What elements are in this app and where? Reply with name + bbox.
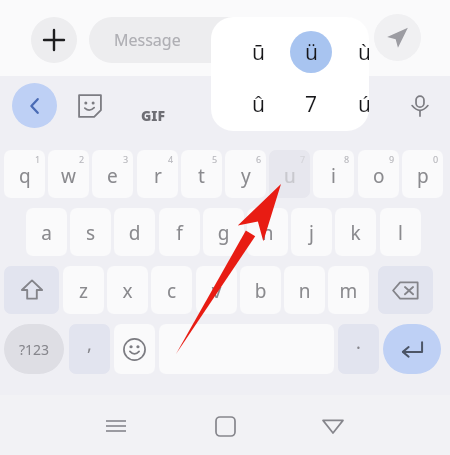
staticText: g bbox=[203, 220, 244, 256]
staticText: u bbox=[284, 163, 296, 189]
staticText: ?123 bbox=[19, 340, 50, 359]
button[interactable]: z bbox=[63, 266, 104, 314]
button[interactable]: Stickers bbox=[74, 90, 106, 122]
button[interactable]: x bbox=[107, 266, 148, 314]
staticText: m bbox=[328, 278, 369, 314]
button[interactable]: k bbox=[335, 208, 376, 256]
staticText: r bbox=[154, 163, 162, 189]
button[interactable]: Enter bbox=[383, 324, 441, 374]
staticText: l bbox=[380, 220, 421, 256]
button[interactable]: i bbox=[313, 150, 354, 198]
staticText: . bbox=[338, 330, 379, 374]
button[interactable]: Backspace bbox=[378, 266, 433, 314]
staticText: c bbox=[151, 278, 192, 314]
button[interactable]: Hide keyboard bbox=[317, 410, 349, 442]
staticText: b bbox=[240, 278, 281, 314]
button[interactable]: d bbox=[114, 208, 155, 256]
button[interactable]: Add attachment bbox=[31, 17, 77, 63]
button[interactable]: ü bbox=[290, 31, 332, 73]
button[interactable]: 7 bbox=[290, 83, 332, 125]
staticText: o bbox=[373, 163, 385, 189]
staticText: 2 bbox=[79, 153, 85, 165]
staticText: ù bbox=[358, 38, 369, 67]
staticText: i bbox=[331, 163, 336, 189]
staticText: Message bbox=[114, 29, 181, 51]
button[interactable]: b bbox=[240, 266, 281, 314]
staticText: 4 bbox=[168, 153, 174, 165]
staticText: h bbox=[247, 220, 288, 256]
staticText: j bbox=[291, 220, 332, 256]
button[interactable]: g bbox=[203, 208, 244, 256]
staticText: GIF bbox=[141, 106, 166, 125]
staticText: 8 bbox=[344, 153, 350, 165]
button[interactable]: a bbox=[26, 208, 67, 256]
staticText: ú bbox=[358, 90, 369, 119]
button[interactable]: Shift bbox=[4, 266, 59, 314]
button[interactable]: c bbox=[151, 266, 192, 314]
button[interactable]: r bbox=[137, 150, 178, 198]
staticText: t bbox=[198, 163, 205, 189]
staticText: 9 bbox=[389, 153, 395, 165]
staticText: , bbox=[69, 332, 110, 374]
staticText: s bbox=[70, 220, 111, 256]
button[interactable]: , bbox=[69, 324, 110, 374]
button[interactable]: Space bbox=[159, 324, 334, 374]
button[interactable]: y bbox=[225, 150, 266, 198]
button[interactable]: GIF bbox=[128, 90, 178, 140]
button[interactable]: Recents bbox=[100, 410, 132, 442]
staticText: 3 bbox=[123, 153, 129, 165]
button[interactable]: s bbox=[70, 208, 111, 256]
staticText: n bbox=[284, 278, 325, 314]
button[interactable]: j bbox=[291, 208, 332, 256]
button[interactable]: Home bbox=[209, 410, 241, 442]
staticText: ū bbox=[252, 38, 265, 67]
staticText: û bbox=[252, 90, 265, 119]
button[interactable]: ū bbox=[237, 31, 279, 73]
staticText: z bbox=[63, 278, 104, 314]
staticText: d bbox=[114, 220, 155, 256]
staticText: 0 bbox=[433, 153, 439, 165]
button[interactable]: q bbox=[4, 150, 45, 198]
button[interactable]: t bbox=[181, 150, 222, 198]
staticText: e bbox=[107, 163, 118, 189]
staticText: 1 bbox=[35, 153, 41, 165]
button[interactable]: o bbox=[358, 150, 399, 198]
staticText: q bbox=[19, 163, 31, 189]
button[interactable]: e bbox=[92, 150, 133, 198]
button[interactable]: Voice input bbox=[404, 90, 436, 122]
staticText: ü bbox=[305, 38, 318, 67]
button[interactable]: f bbox=[159, 208, 200, 256]
button[interactable]: ?123 bbox=[4, 324, 64, 374]
button[interactable]: m bbox=[328, 266, 369, 314]
button[interactable]: w bbox=[48, 150, 89, 198]
staticText: 7 bbox=[305, 90, 318, 119]
button[interactable]: l bbox=[380, 208, 421, 256]
staticText: y bbox=[241, 163, 251, 189]
staticText: 6 bbox=[256, 153, 262, 165]
button[interactable]: p bbox=[402, 150, 443, 198]
button[interactable]: Expand toolbar bbox=[12, 83, 57, 128]
button[interactable]: u bbox=[269, 150, 310, 198]
staticText: w bbox=[61, 163, 76, 189]
button[interactable]: Emoji bbox=[114, 324, 155, 374]
staticText: x bbox=[107, 278, 148, 314]
staticText: k bbox=[335, 220, 376, 256]
button[interactable]: n bbox=[284, 266, 325, 314]
staticText: 7 bbox=[300, 153, 306, 165]
staticText: f bbox=[159, 220, 200, 256]
button[interactable]: . bbox=[338, 324, 379, 374]
staticText: 5 bbox=[212, 153, 218, 165]
button[interactable]: v bbox=[196, 266, 237, 314]
button[interactable]: Message bbox=[89, 17, 367, 63]
button[interactable]: h bbox=[247, 208, 288, 256]
button[interactable]: û bbox=[237, 83, 279, 125]
staticText: p bbox=[417, 163, 429, 189]
button[interactable]: ù bbox=[343, 31, 369, 73]
button[interactable]: Send bbox=[374, 14, 421, 61]
button[interactable]: ú bbox=[343, 83, 369, 125]
staticText: a bbox=[26, 220, 67, 256]
staticText: v bbox=[196, 278, 237, 314]
